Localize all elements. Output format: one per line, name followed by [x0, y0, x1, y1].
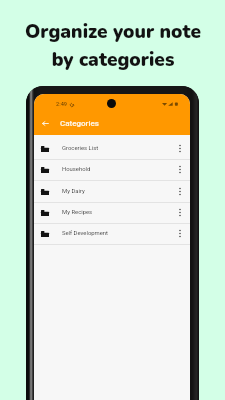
button[interactable]: Back	[34, 111, 190, 135]
button[interactable]: More options for My Dairy	[173, 181, 187, 202]
button[interactable]: More options for Self Development	[173, 223, 187, 244]
staticText: Self Development	[62, 230, 109, 237]
button[interactable]: My Dairy	[34, 181, 190, 202]
button[interactable]: Household	[34, 159, 190, 180]
button[interactable]: More options for Household	[173, 159, 187, 180]
button[interactable]: Self Development	[34, 223, 190, 244]
button[interactable]: Back	[39, 115, 51, 131]
staticText: Organize your note by categories	[25, 19, 201, 72]
staticText: My Dairy	[62, 188, 85, 195]
button[interactable]: More options for My Recipes	[173, 202, 187, 223]
button[interactable]: More options for Groceries List	[173, 138, 187, 159]
staticText: Groceries List	[62, 145, 99, 152]
staticText: 2:49	[56, 101, 68, 108]
staticText: Categories	[60, 119, 99, 128]
staticText: Household	[62, 166, 91, 173]
button[interactable]: Groceries List	[34, 138, 190, 159]
button[interactable]: My Recipes	[34, 202, 190, 223]
staticText: My Recipes	[62, 209, 93, 216]
